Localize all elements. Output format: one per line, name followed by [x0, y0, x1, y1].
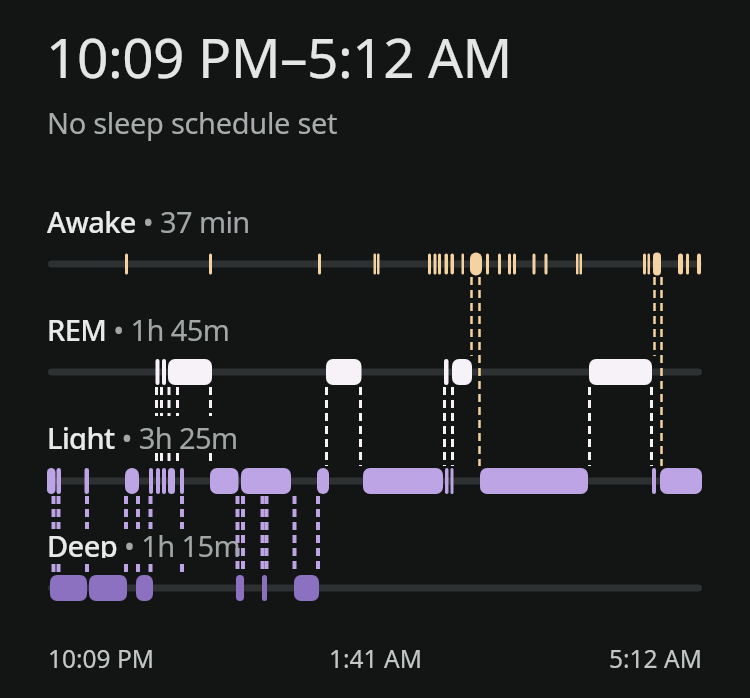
staticText: 10:09 PM–5:12 AM: [46, 19, 512, 94]
staticText: REM • 1h 45m: [47, 310, 230, 342]
staticText: No sleep schedule set: [47, 103, 338, 142]
button[interactable]: Awake • 37 min: [47, 202, 750, 234]
button[interactable]: Deep • 1h 15m: [47, 526, 750, 558]
staticText: Light • 3h 25m: [47, 418, 238, 450]
staticText: 10:09 PM: [48, 642, 155, 674]
button[interactable]: REM • 1h 45m: [47, 310, 750, 342]
staticText: 5:12 AM: [609, 642, 702, 674]
staticText: Awake • 37 min: [47, 202, 250, 234]
staticText: 1:41 AM: [329, 642, 422, 674]
button[interactable]: Light • 3h 25m: [47, 418, 750, 450]
staticText: Deep • 1h 15m: [47, 526, 240, 558]
